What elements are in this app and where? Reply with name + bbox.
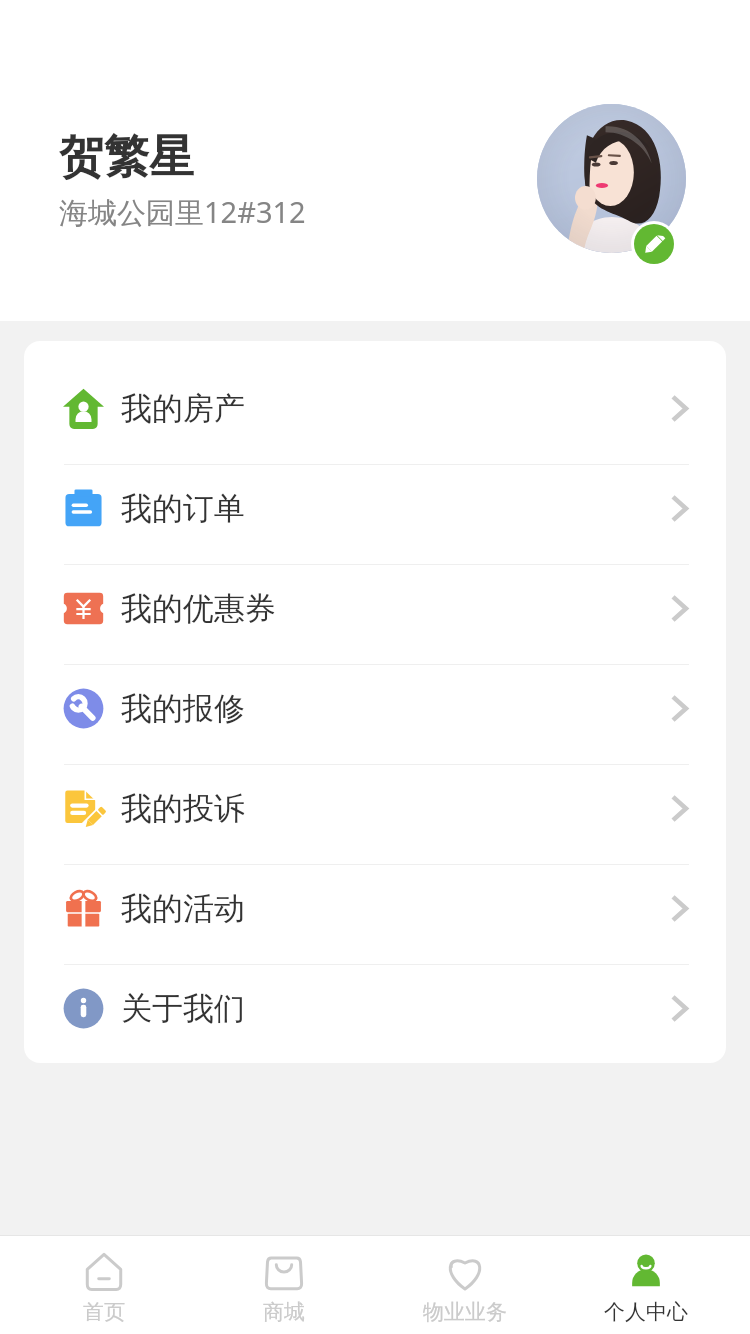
button[interactable]: 个人中心 bbox=[555, 1236, 736, 1334]
button[interactable]: 我的优惠券 bbox=[24, 558, 726, 658]
staticText: 我的优惠券 bbox=[121, 589, 276, 628]
staticText: 首页 bbox=[83, 1299, 125, 1325]
staticText: 关于我们 bbox=[121, 989, 245, 1028]
staticText: 海城公园里12#312 bbox=[59, 192, 306, 232]
button[interactable]: 我的报修 bbox=[24, 658, 726, 758]
button[interactable]: 我的活动 bbox=[24, 858, 726, 958]
button[interactable]: 物业业务 bbox=[374, 1236, 555, 1334]
button[interactable]: 我的订单 bbox=[24, 458, 726, 558]
staticText: 商城 bbox=[263, 1299, 305, 1325]
staticText: 我的投诉 bbox=[121, 789, 245, 828]
button[interactable]: 关于我们 bbox=[24, 958, 726, 1058]
staticText: 我的活动 bbox=[121, 889, 245, 928]
button[interactable]: 商城 bbox=[194, 1236, 374, 1334]
button[interactable]: 我的房产 bbox=[24, 358, 726, 458]
staticText: 贺繁星 bbox=[59, 129, 194, 186]
button[interactable]: 我的投诉 bbox=[24, 758, 726, 858]
button[interactable]: 首页 bbox=[14, 1236, 194, 1334]
staticText: 我的订单 bbox=[121, 489, 245, 528]
staticText: 我的房产 bbox=[121, 389, 245, 428]
staticText: 我的报修 bbox=[121, 689, 245, 728]
staticText: 物业业务 bbox=[423, 1299, 507, 1325]
staticText: 个人中心 bbox=[604, 1299, 688, 1325]
button[interactable]: Edit profile bbox=[634, 224, 674, 264]
